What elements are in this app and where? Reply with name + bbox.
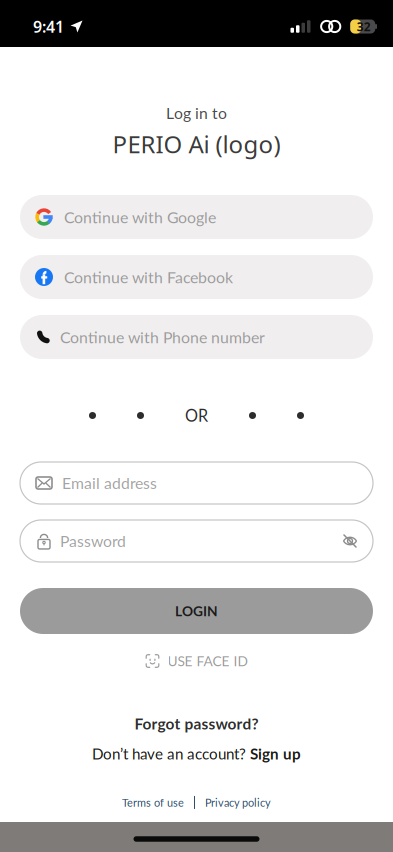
staticText: Privacy policy — [205, 796, 271, 809]
button[interactable]: USE FACE ID — [145, 652, 247, 670]
staticText: 9:41 — [33, 16, 64, 37]
button[interactable]: Privacy policy — [205, 796, 271, 809]
button[interactable]: Don’t have an account? Sign up — [92, 743, 301, 764]
staticText: Password — [60, 532, 126, 550]
staticText: 32 — [357, 18, 371, 34]
staticText: LOGIN — [175, 603, 218, 619]
button[interactable]: Terms of use — [122, 796, 184, 809]
staticText: Log in to — [166, 104, 227, 122]
staticText: Continue with Facebook — [64, 267, 233, 286]
staticText: USE FACE ID — [167, 653, 247, 669]
staticText: Forgot password? — [134, 714, 258, 733]
staticText: PERIO Ai (logo) — [112, 128, 280, 160]
staticText: Don’t have an account? Sign up — [92, 745, 301, 762]
staticText: Continue with Phone number — [60, 327, 265, 346]
button[interactable]: LOGIN — [20, 588, 373, 634]
button[interactable]: Continue with Google — [20, 195, 373, 239]
button[interactable]: Continue with Phone number — [20, 315, 373, 359]
staticText: Terms of use — [122, 796, 184, 809]
button[interactable]: Continue with Facebook — [20, 255, 373, 299]
button[interactable]: Email address — [20, 462, 373, 504]
button[interactable]: Password — [20, 520, 373, 562]
staticText: Email address — [62, 474, 157, 492]
staticText: Continue with Google — [64, 207, 216, 226]
staticText: OR — [185, 406, 208, 425]
button[interactable]: Show password — [330, 520, 370, 562]
button[interactable]: Forgot password? — [134, 713, 258, 734]
